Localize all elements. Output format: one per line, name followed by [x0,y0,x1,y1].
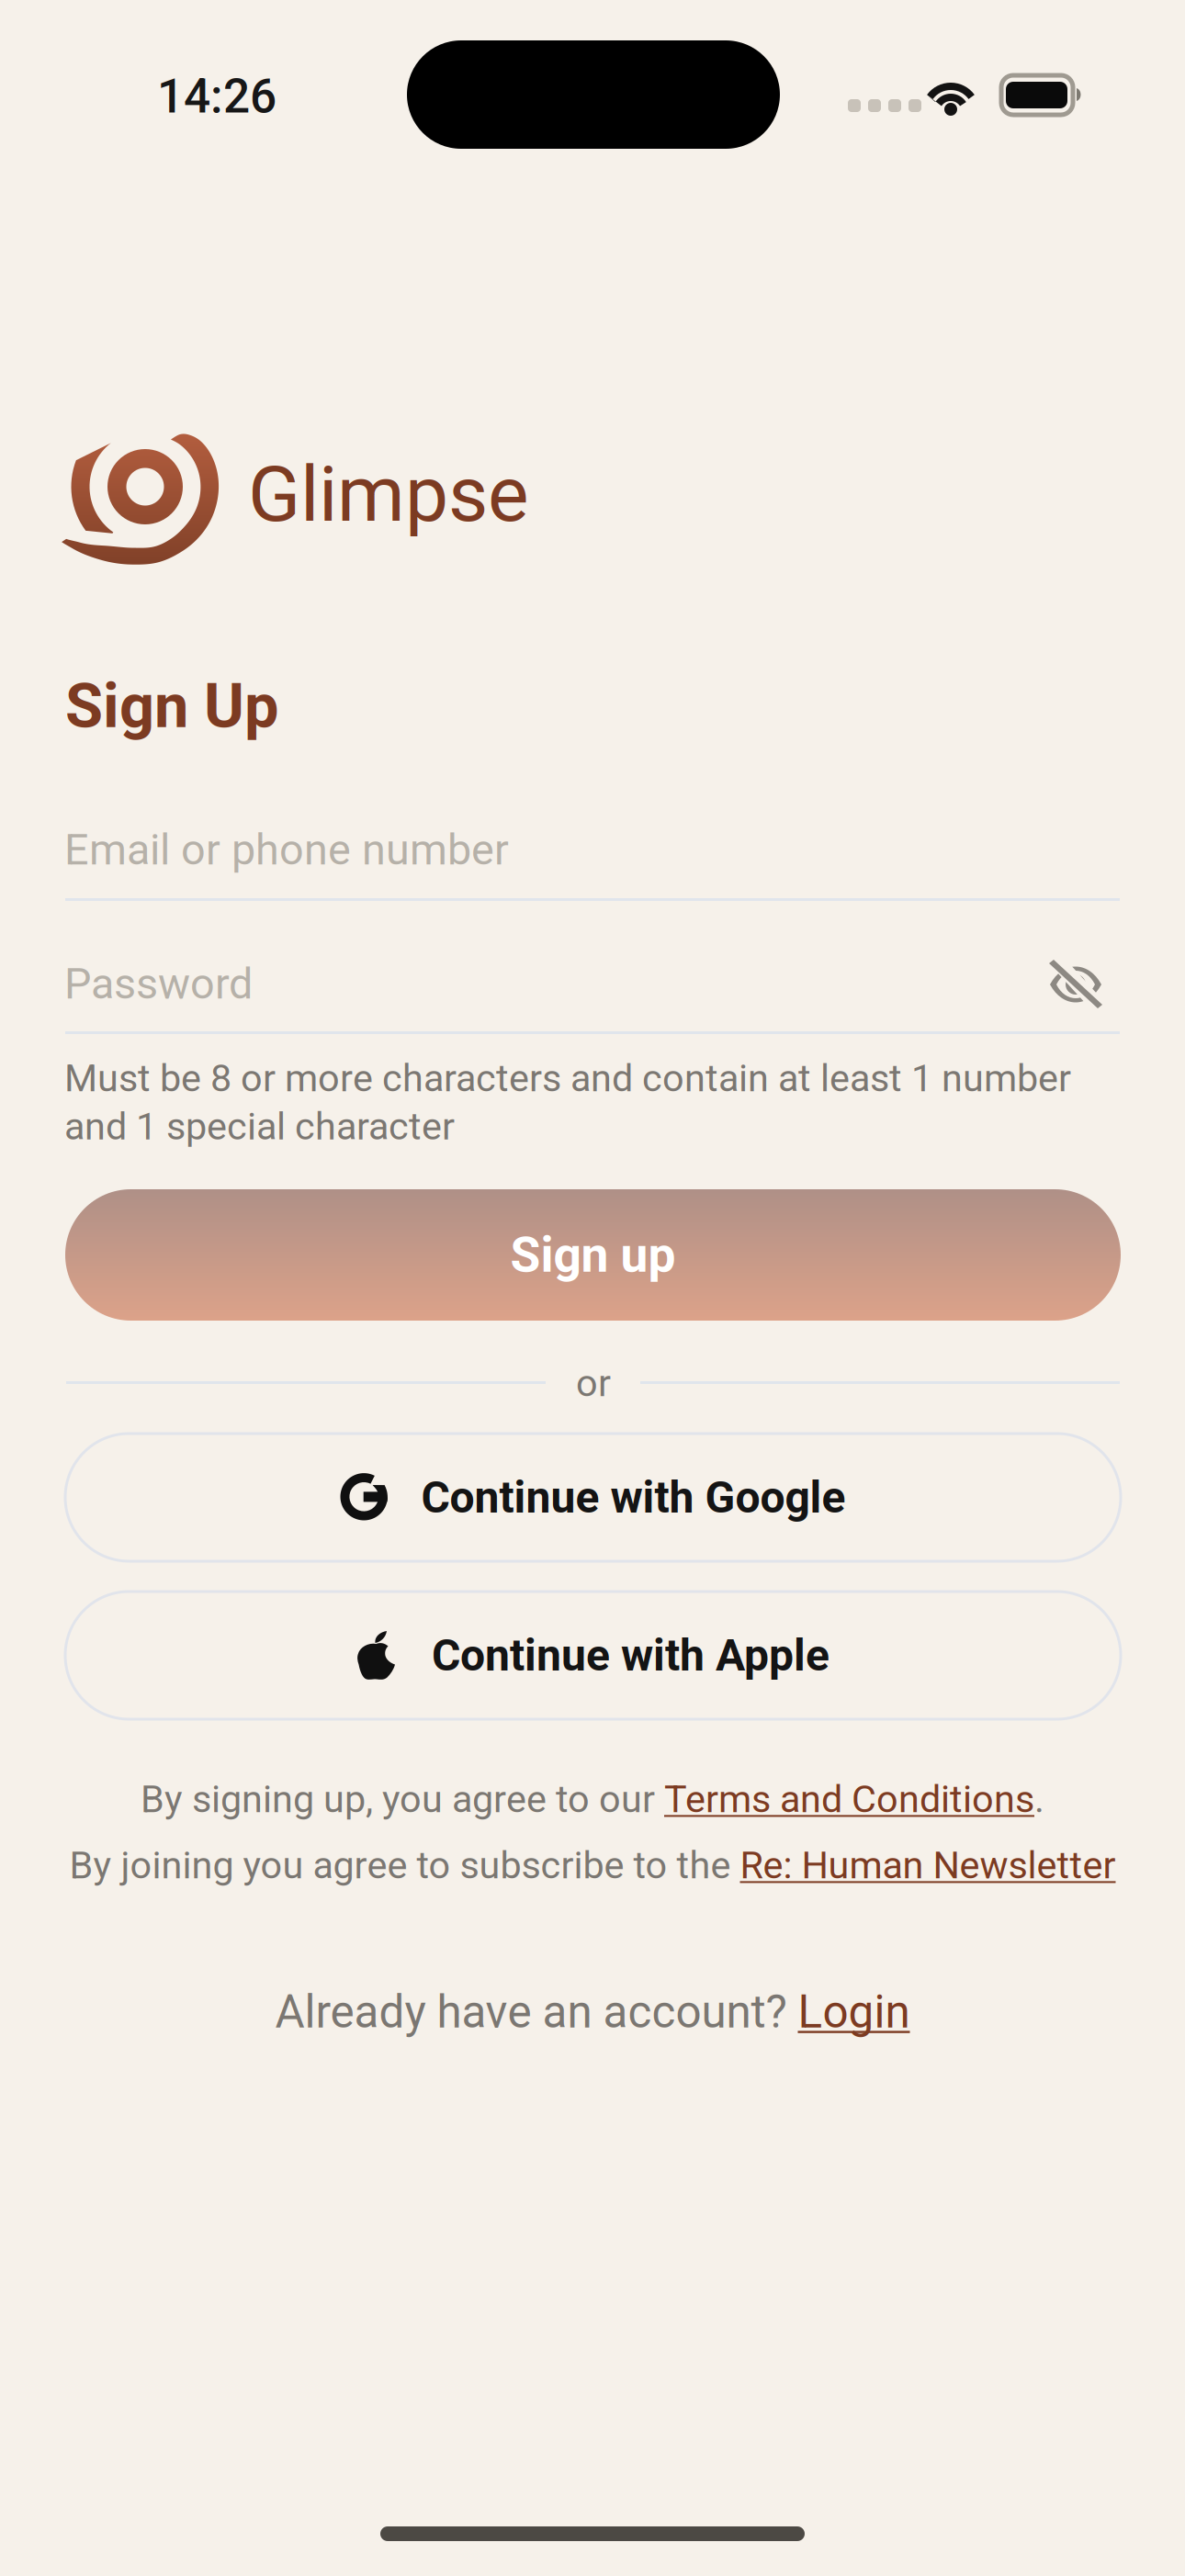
staticText: Continue with Apple [432,1630,829,1681]
staticText: Sign Up [65,670,279,742]
staticText: Terms and Conditions [664,1777,1034,1821]
button[interactable]: Continue with Google [65,1434,1121,1561]
button[interactable]: Show password [1049,962,1104,1009]
staticText: . [1034,1777,1044,1821]
button[interactable]: Sign up [65,1189,1121,1321]
staticText: Glimpse [248,449,529,539]
button[interactable]: Terms and Conditions [664,1777,1034,1821]
staticText: By signing up, you agree to our [141,1777,664,1821]
staticText: Email or phone number [64,825,509,875]
staticText: Password [64,959,253,1009]
staticText: Continue with Google [421,1472,846,1523]
staticText: By joining you agree to subscribe to the [69,1843,740,1888]
staticText: Must be 8 or more characters and contain… [64,1056,1071,1149]
button[interactable]: Continue with Apple [65,1592,1121,1719]
staticText: Sign up [510,1226,676,1284]
button[interactable]: Re: Human Newsletter [740,1843,1116,1888]
staticText: Login [798,1985,910,2039]
staticText: Re: Human Newsletter [740,1843,1116,1888]
staticText: Already have an account? [275,1985,798,2039]
staticText: 14:26 [157,69,276,124]
staticText: or [576,1361,611,1405]
button[interactable]: Login [798,1985,910,2039]
